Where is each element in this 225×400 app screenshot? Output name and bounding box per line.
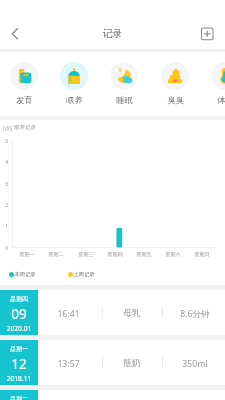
button[interactable]: Back (5, 24, 25, 44)
button[interactable]: 喂养 (50, 62, 98, 105)
staticText: 1 (3, 222, 10, 229)
staticText: 上周记录 (73, 271, 95, 278)
staticText: 体温 (217, 95, 225, 105)
staticText: 09 (0, 305, 38, 323)
staticText: 本周记录 (14, 271, 36, 278)
button[interactable]: 星期四 (0, 290, 225, 335)
staticText: 星期四 (103, 251, 127, 258)
staticText: 星期二 (44, 251, 68, 258)
staticText: 3 (3, 180, 10, 187)
staticText: 星期一 (0, 345, 38, 353)
button[interactable]: 星期一 (0, 340, 225, 385)
staticText: 记录 (0, 27, 225, 40)
staticText: 瓶奶 (120, 358, 144, 369)
staticText: 星期三 (74, 251, 98, 258)
staticText: (次) (3, 124, 12, 132)
staticText: 星期六 (161, 251, 185, 258)
button[interactable]: 睡眠 (100, 62, 148, 105)
button[interactable]: 星期二 (0, 390, 225, 400)
staticText: 4 (3, 158, 10, 165)
staticText: 2 (3, 201, 10, 208)
staticText: 5 (3, 137, 10, 144)
staticText: 星期一 (15, 251, 39, 258)
staticText: 喂养记录 (14, 124, 36, 131)
staticText: 星期二 (0, 395, 38, 400)
staticText: 0 (3, 244, 10, 251)
staticText: 喂养 (66, 95, 83, 105)
staticText: 2018.11 (0, 374, 38, 383)
button[interactable]: Add record (197, 24, 217, 44)
button[interactable]: 发育 (0, 62, 48, 105)
staticText: 星期日 (190, 251, 214, 258)
staticText: 星期五 (132, 251, 156, 258)
staticText: 13:57 (52, 358, 85, 370)
staticText: 母乳 (120, 308, 144, 319)
staticText: 350ml (175, 358, 215, 370)
staticText: 星期四 (0, 295, 38, 303)
staticText: 16:41 (52, 308, 85, 320)
staticText: 臭臭 (167, 95, 184, 105)
staticText: 8.6分钟 (175, 308, 215, 320)
button[interactable]: 体温 (201, 62, 225, 105)
button[interactable]: 臭臭 (151, 62, 199, 105)
staticText: 2020.01 (0, 324, 38, 333)
staticText: 12 (0, 355, 38, 373)
staticText: 睡眠 (116, 95, 133, 105)
staticText: 发育 (16, 95, 33, 105)
